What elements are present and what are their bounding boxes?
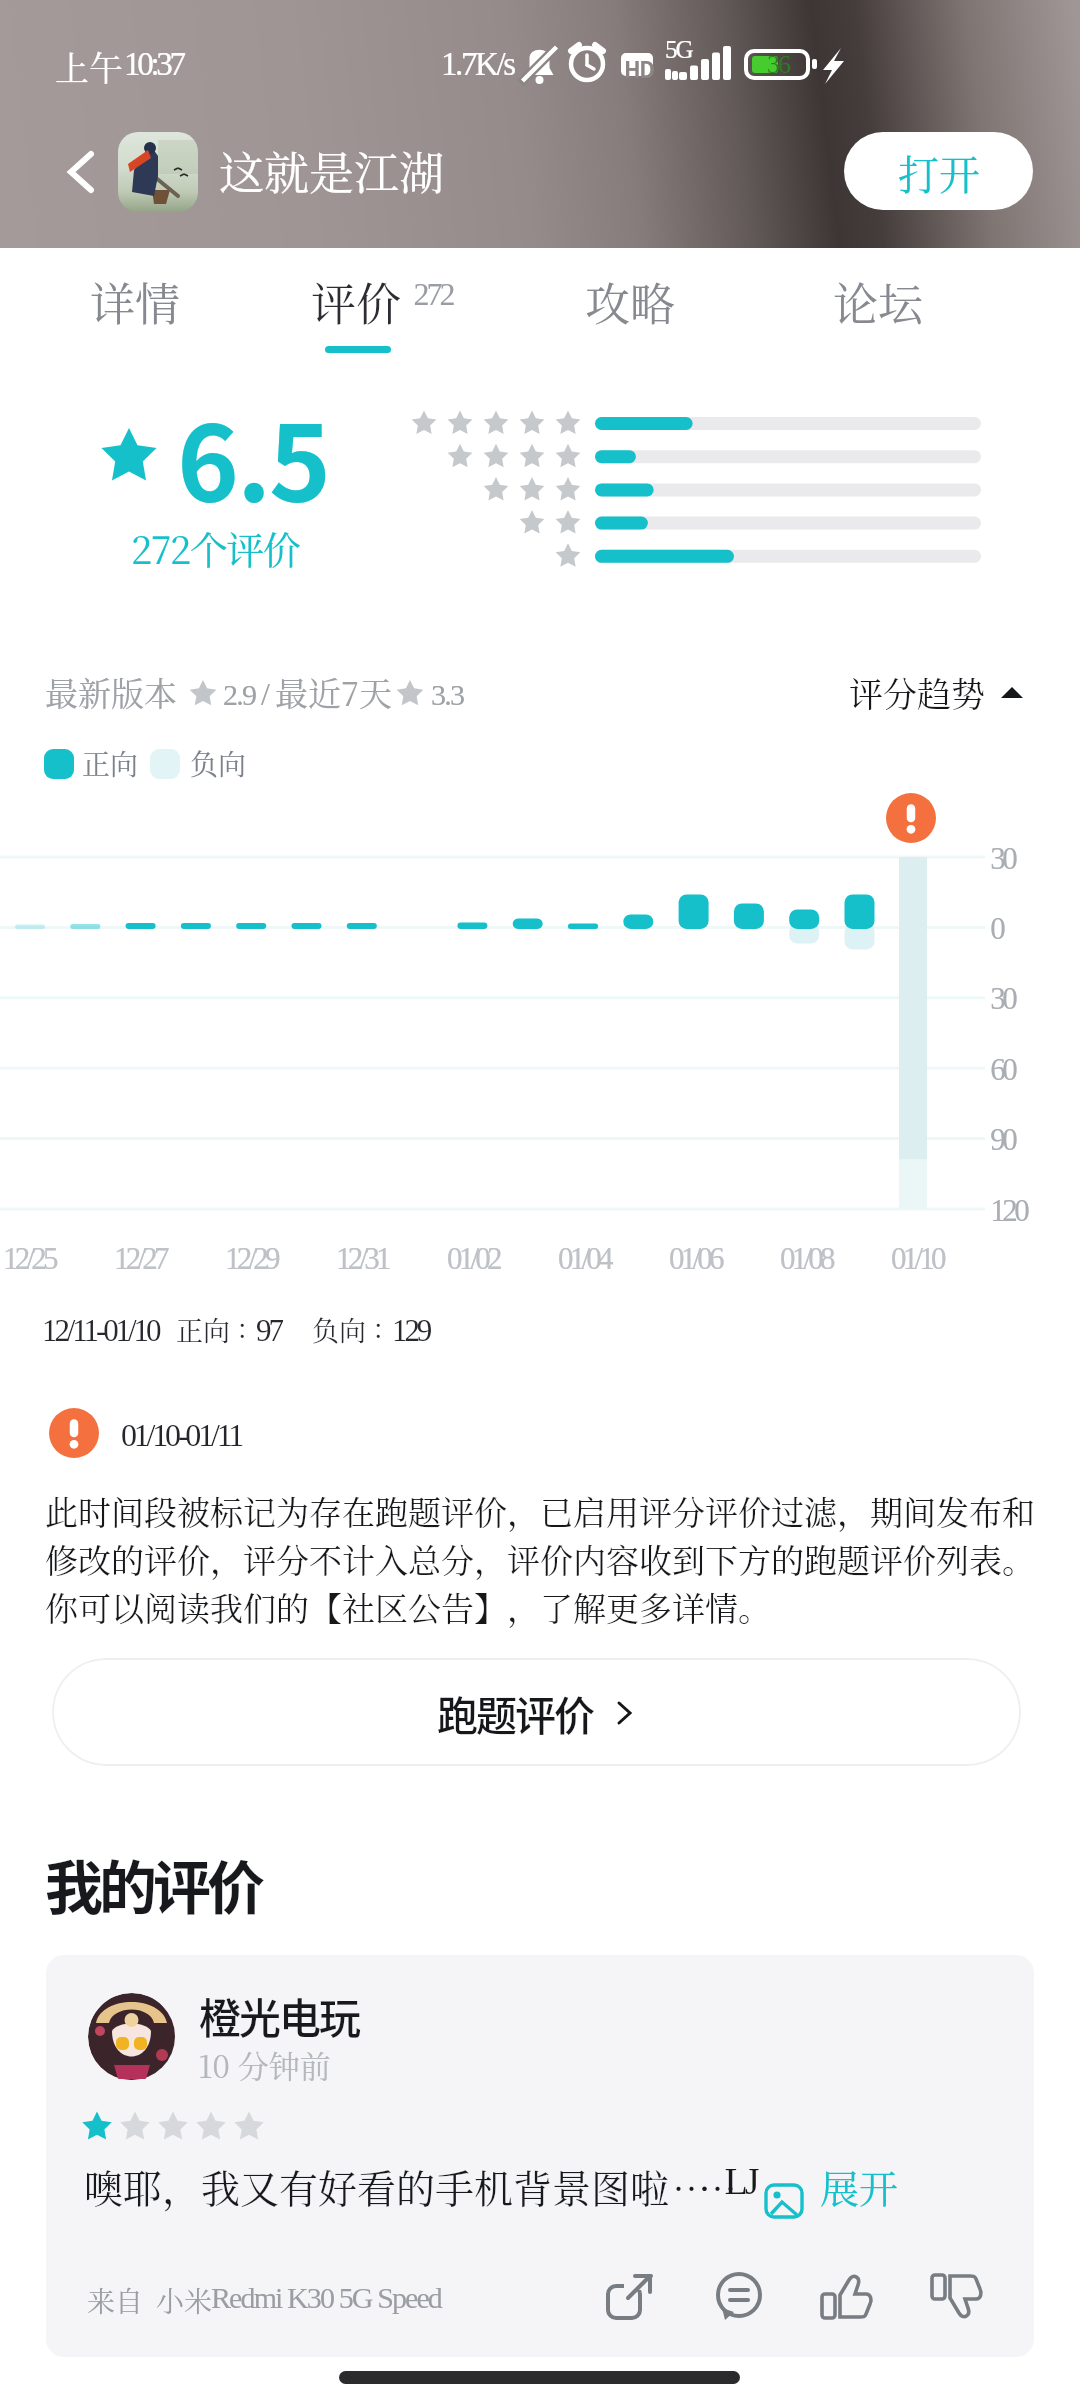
staticText: 噢耶，我又有好看的手机背景图啦 (84, 2158, 670, 2214)
staticText: / (261, 676, 270, 711)
staticText: 详情 (90, 269, 181, 334)
staticText: …… (672, 2158, 725, 2214)
staticText: 5G (665, 36, 692, 64)
staticText: 正向 (176, 1310, 230, 1349)
staticText: 10 分钟前 (198, 2042, 331, 2087)
staticText: 272 (415, 276, 454, 311)
button[interactable]: Like (819, 2269, 875, 2325)
staticText: 12/31 (336, 1241, 388, 1275)
staticText: 60 (992, 1052, 1016, 1086)
staticText: 36 (768, 50, 790, 79)
button[interactable]: 打开 (844, 132, 1033, 210)
button[interactable]: Back (52, 142, 112, 202)
staticText: 6.5 (177, 380, 330, 532)
staticText: Redmi K30 5G Speed (211, 2281, 441, 2314)
staticText: 正向 (82, 743, 139, 783)
button[interactable]: 详情 (45, 262, 225, 362)
staticText: 12/11-01/10 (42, 1313, 159, 1347)
staticText: 0 (992, 911, 1004, 945)
staticText: 打开 (898, 143, 980, 202)
staticText: 12/27 (114, 1241, 166, 1275)
staticText: 来自 (87, 2280, 144, 2320)
button[interactable]: Dislike (929, 2269, 985, 2325)
button[interactable]: 评价 (268, 262, 448, 362)
staticText: 负向 (312, 1310, 366, 1349)
staticText: 01/08 (780, 1241, 832, 1275)
staticText: 01/04 (558, 1241, 610, 1275)
button[interactable]: Comment (711, 2269, 767, 2325)
button[interactable]: 跑题评价 (52, 1658, 1021, 1766)
staticText: 30 (992, 981, 1016, 1015)
staticText: 01/10 (891, 1241, 943, 1275)
staticText: 12/29 (225, 1241, 277, 1275)
staticText: 01/02 (447, 1241, 499, 1275)
staticText: 01/06 (669, 1241, 721, 1275)
button[interactable]: 橙光电玩 (46, 1955, 1034, 2357)
staticText: LJ (726, 2160, 758, 2202)
staticText: 此时间段被标记为存在跑题评价，已启用评分评价过滤，期间发布和修改的评价，评分不计… (45, 1487, 1037, 1631)
staticText: 展开 (820, 2158, 899, 2214)
staticText: 3.3 (431, 678, 464, 711)
staticText: 1.7K/s (441, 46, 514, 83)
staticText: 上午 (55, 42, 123, 91)
staticText: 最近7天 (275, 668, 393, 715)
staticText: 论坛 (833, 269, 924, 334)
staticText: 90 (992, 1122, 1016, 1156)
staticText: ： (236, 1308, 263, 1347)
staticText: 2.9 (223, 678, 256, 711)
staticText: ： (372, 1308, 399, 1347)
button[interactable]: Share (601, 2269, 657, 2325)
staticText: 最新版本 (45, 668, 177, 715)
staticText: HD (624, 52, 654, 84)
staticText: 评价 (311, 269, 402, 334)
staticText: 12/25 (3, 1241, 55, 1275)
staticText: 小米 (156, 2280, 213, 2320)
staticText: 97 (256, 1313, 281, 1347)
staticText: 这就是江湖 (219, 138, 445, 203)
staticText: 120 (992, 1193, 1028, 1227)
button[interactable]: Image (764, 2181, 808, 2221)
staticText: 我的评价 (45, 1842, 262, 1926)
staticText: 129 (392, 1313, 430, 1347)
staticText: 橙光电玩 (199, 1985, 360, 2046)
staticText: 负向 (190, 743, 247, 783)
staticText: 30 (992, 841, 1016, 875)
staticText: 评分趋势 (849, 668, 985, 717)
button[interactable]: 评分趋势 (845, 662, 1031, 724)
staticText: 272个评价 (131, 520, 300, 575)
button[interactable]: 攻略 (540, 262, 720, 362)
staticText: 攻略 (585, 269, 676, 334)
staticText: 10:37 (124, 46, 183, 83)
button[interactable]: 论坛 (788, 262, 968, 362)
staticText: 01/10-01/11 (121, 1417, 242, 1452)
staticText: 跑题评价 (437, 1683, 593, 1742)
